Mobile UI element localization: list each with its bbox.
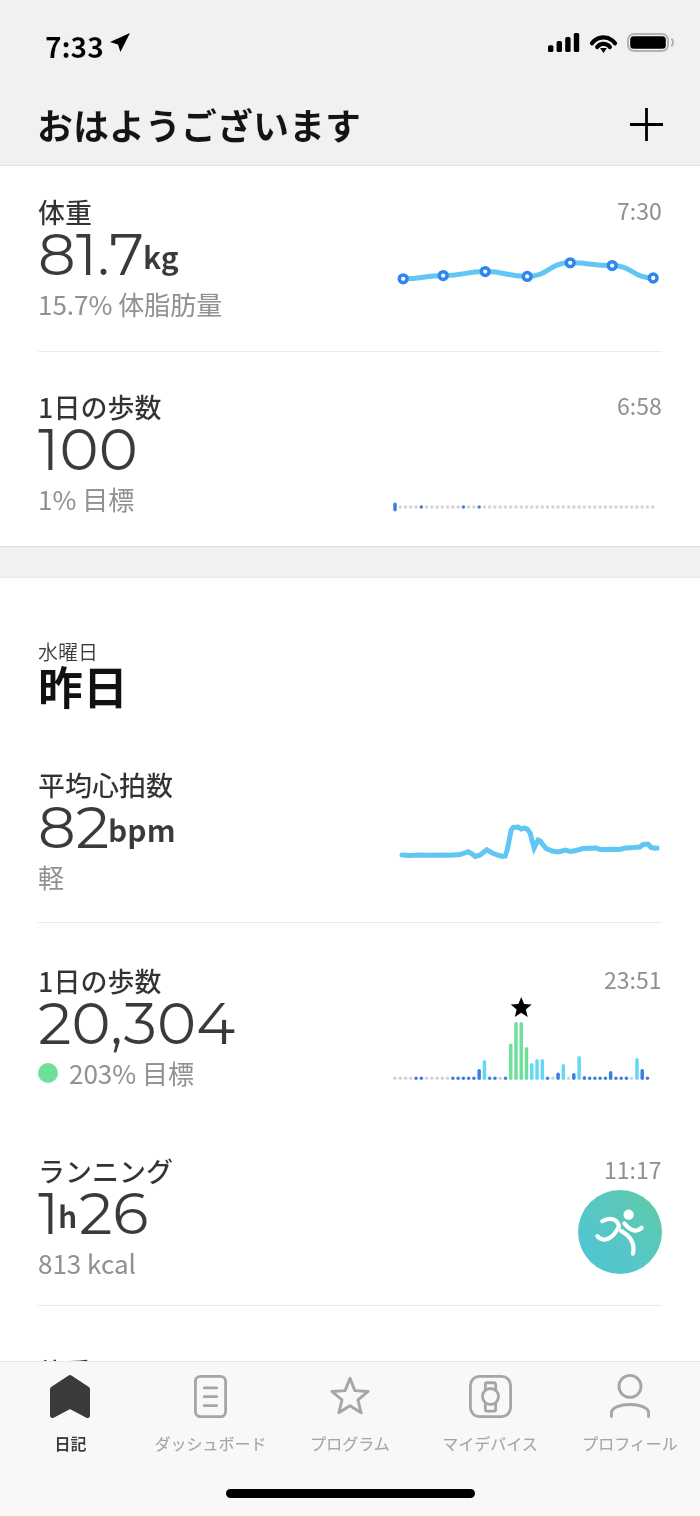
staticText: ランニング	[38, 1151, 173, 1190]
staticText: 昨日	[38, 653, 129, 718]
staticText: マイデバイス	[442, 1431, 538, 1454]
staticText: 82	[38, 791, 110, 863]
staticText: 6:58	[617, 388, 662, 421]
button[interactable]: 日記	[0, 1362, 140, 1462]
staticText: 11:17	[604, 1152, 662, 1185]
staticText: プロフィール	[582, 1431, 678, 1454]
staticText: 1% 目標	[38, 480, 135, 518]
button[interactable]	[0, 742, 700, 917]
button[interactable]	[0, 364, 700, 539]
staticText: 1	[38, 1177, 60, 1249]
staticText: 15.7% 体脂肪量	[38, 285, 223, 323]
staticText: 20,304	[38, 987, 236, 1059]
staticText: 軽	[38, 858, 65, 896]
staticText: 1日の歩数	[38, 387, 162, 426]
button[interactable]: マイデバイス	[420, 1362, 560, 1462]
staticText: 100	[38, 413, 139, 485]
button[interactable]: プロフィール	[560, 1362, 700, 1462]
staticText: 体重	[38, 1352, 92, 1377]
staticText: bpm	[108, 807, 176, 850]
staticText: 23:51	[604, 962, 662, 995]
staticText: 体重	[38, 192, 92, 231]
staticText: 7:33	[45, 26, 104, 67]
staticText: 6:00	[617, 1354, 662, 1379]
staticText: 水曜日	[38, 637, 98, 666]
button[interactable]: ダッシュボード	[140, 1362, 280, 1462]
staticText: プログラム	[310, 1431, 390, 1454]
staticText: 日記	[54, 1431, 87, 1454]
button[interactable]: Add	[618, 96, 674, 152]
staticText: 平均心拍数	[38, 765, 173, 804]
staticText: ダッシュボード	[154, 1431, 267, 1454]
staticText: 81.7	[38, 218, 145, 290]
staticText: kg	[143, 234, 179, 277]
button[interactable]	[0, 1128, 700, 1303]
staticText: 7:30	[617, 193, 662, 226]
staticText: 203% 目標	[69, 1054, 195, 1092]
staticText: おはようございます	[37, 98, 362, 150]
staticText: 26	[79, 1177, 149, 1249]
button[interactable]	[0, 938, 700, 1113]
staticText: 813 kcal	[38, 1244, 136, 1282]
button[interactable]	[0, 169, 700, 344]
staticText: 1日の歩数	[38, 961, 162, 1000]
button[interactable]: プログラム	[280, 1362, 420, 1462]
staticText: h	[58, 1193, 78, 1236]
